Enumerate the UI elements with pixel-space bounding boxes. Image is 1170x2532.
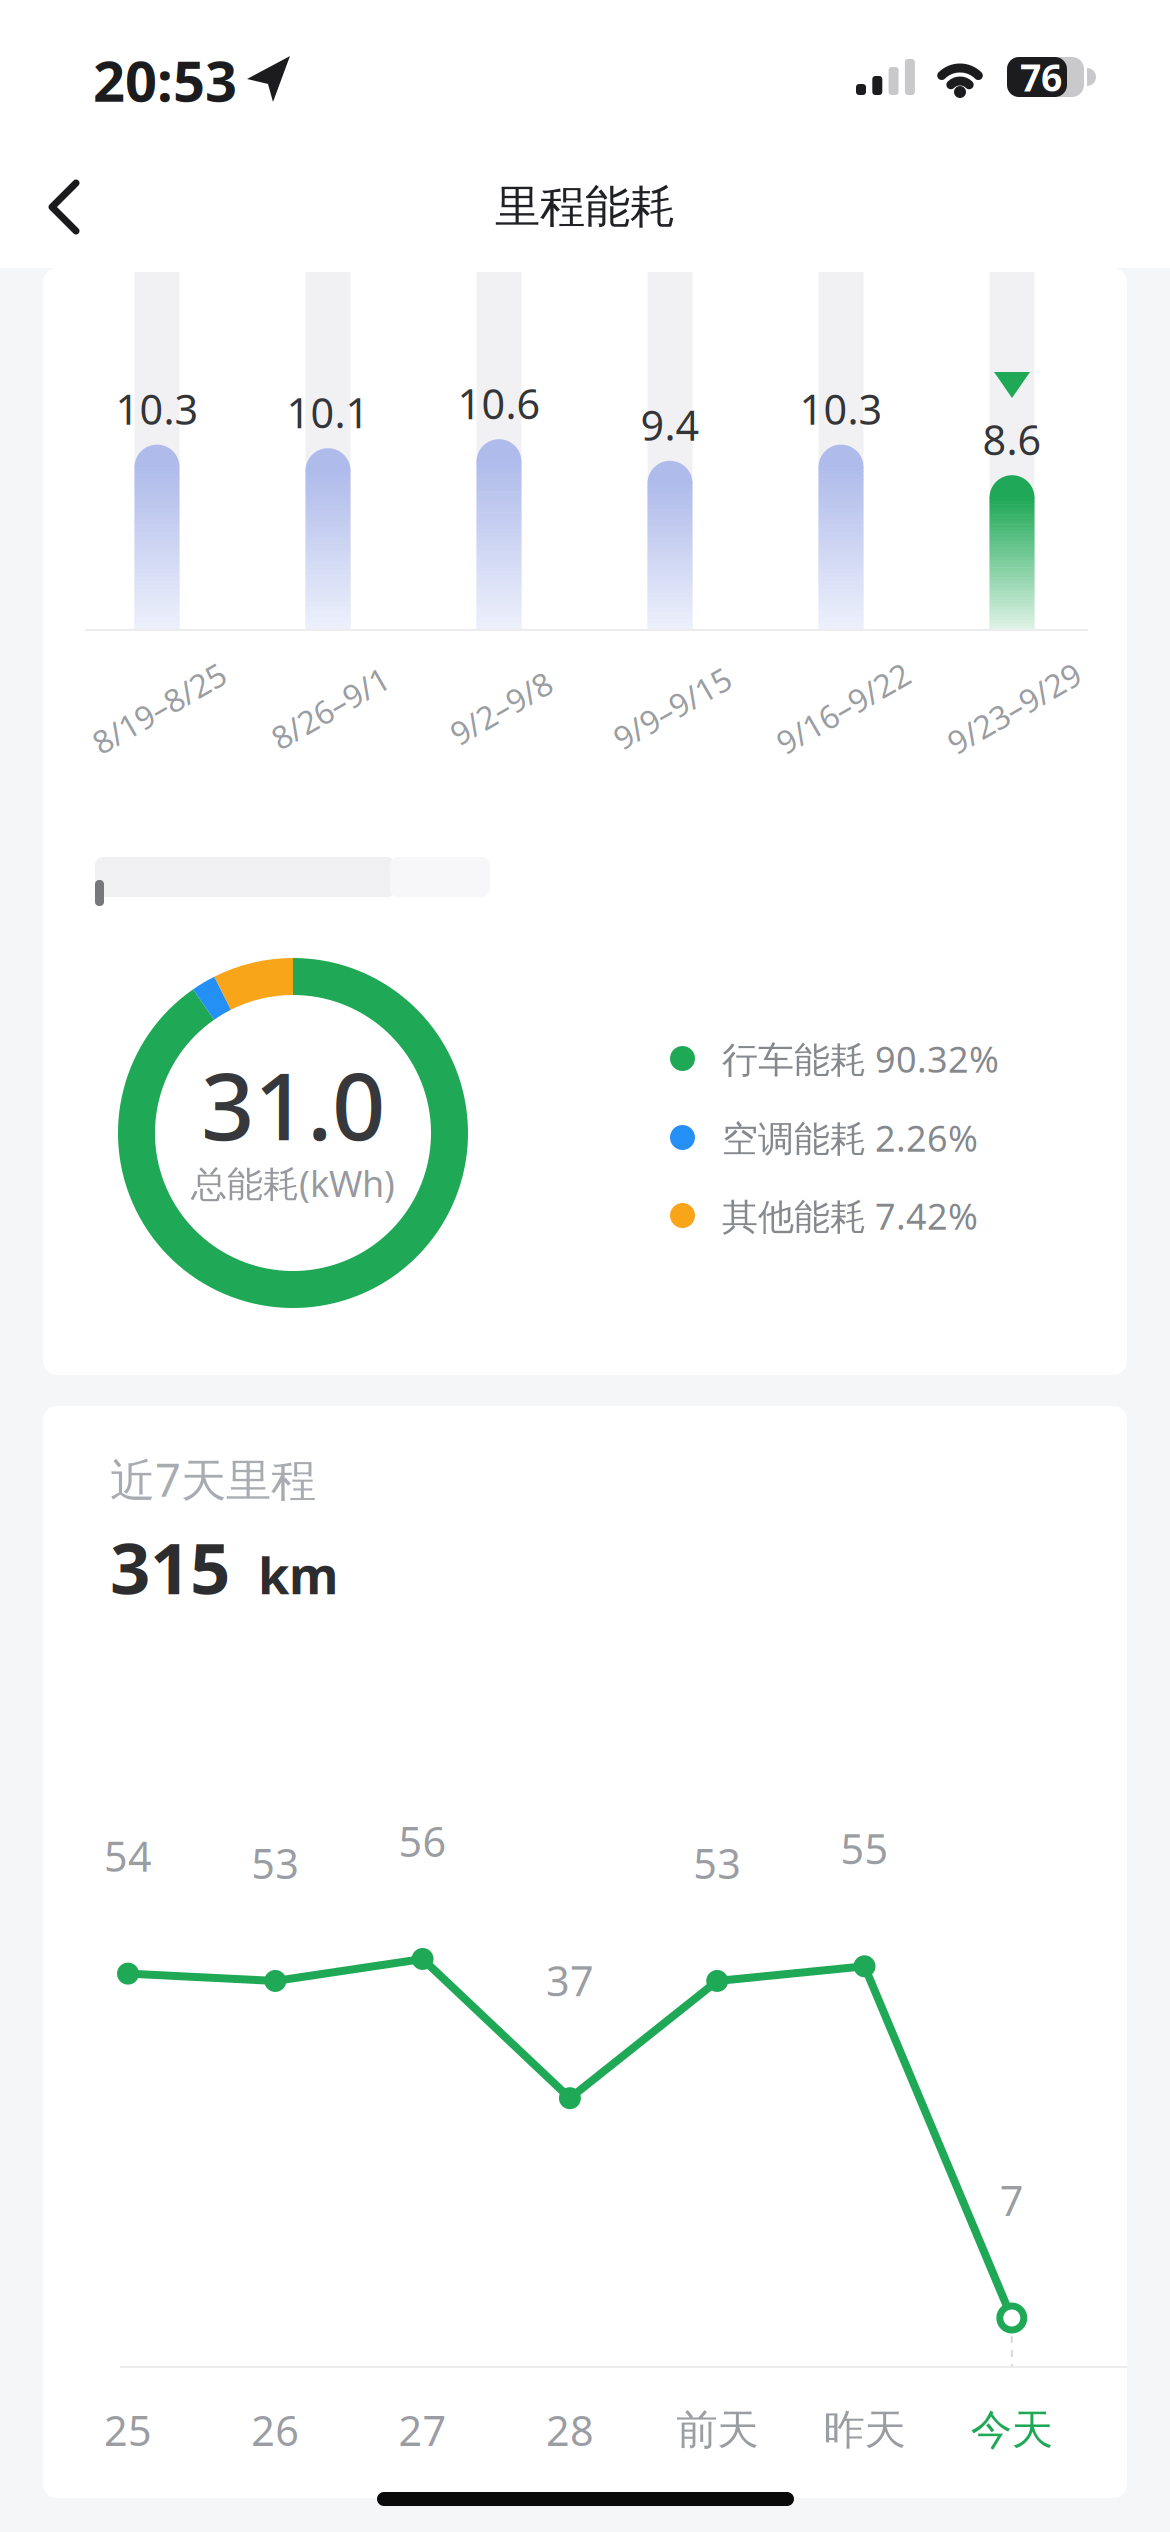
staticText: 10.6 (457, 376, 540, 431)
staticText: 10.1 (286, 385, 369, 440)
staticText: 7 (1000, 2173, 1024, 2227)
staticText: 空调能耗 2.26% (722, 1114, 978, 1162)
staticText: 31.0 (201, 1042, 385, 1166)
staticText: 近7天里程 (110, 1449, 316, 1509)
staticText: 昨天 (823, 2405, 905, 2455)
staticText: 行车能耗 90.32% (722, 1035, 999, 1083)
staticText: 25 (104, 2403, 152, 2457)
staticText: 10.3 (799, 381, 882, 436)
staticText: 今天 (971, 2405, 1053, 2455)
staticText: 8.6 (982, 412, 1041, 467)
staticText: 28 (546, 2403, 594, 2457)
staticText: 8/19–8/25 (85, 687, 233, 729)
staticText: 37 (546, 1953, 594, 2008)
staticText: 8/26–9/1 (265, 687, 395, 729)
staticText: 总能耗(kWh) (191, 1159, 395, 1207)
staticText: 55 (840, 1821, 888, 1876)
staticText: 9/16–9/22 (769, 687, 917, 729)
staticText: 9/2–9/8 (445, 687, 557, 729)
staticText: 里程能耗 (495, 179, 675, 235)
staticText: 10.3 (115, 381, 198, 436)
staticText: 9/9–9/15 (607, 687, 737, 729)
staticText: 53 (693, 1835, 741, 1890)
staticText: 9/23–9/29 (940, 687, 1088, 729)
staticText: 27 (399, 2403, 447, 2457)
staticText: 56 (399, 1813, 447, 1868)
staticText: 54 (104, 1828, 152, 1883)
button[interactable]: Back (24, 159, 120, 255)
staticText: 315 (110, 1520, 230, 1614)
staticText: 76 (1020, 52, 1062, 102)
staticText: 其他能耗 7.42% (722, 1192, 978, 1240)
staticText: 20:53 (93, 43, 237, 117)
staticText: km (258, 1541, 338, 1608)
staticText: 53 (251, 1835, 299, 1890)
staticText: 前天 (676, 2405, 758, 2455)
staticText: 9.4 (640, 397, 699, 452)
staticText: 26 (251, 2403, 299, 2457)
